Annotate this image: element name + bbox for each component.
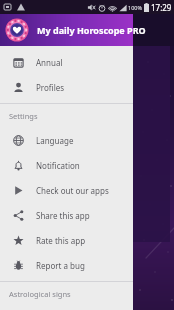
staticText: My daily Horoscope PRO: [37, 24, 146, 36]
staticText: omplies who: [14, 163, 56, 173]
button[interactable]: Rate this app: [0, 228, 133, 253]
staticText: Share this app: [36, 210, 90, 221]
button[interactable]: Report a bug: [0, 253, 133, 278]
staticText: Report a bug: [36, 260, 85, 271]
button[interactable]: Profiles: [0, 75, 133, 100]
staticText: January 20 to: [6, 284, 50, 294]
staticText: 100%: [128, 4, 143, 11]
button[interactable]: Check out our apps: [0, 178, 133, 203]
button[interactable]: Notification: [0, 153, 133, 178]
staticText: Scorpio: [6, 256, 52, 274]
staticText: s about the: [14, 202, 52, 212]
button[interactable]: Share this app: [0, 203, 133, 228]
staticText: Notification: [36, 160, 80, 171]
staticText: February 18: [6, 294, 46, 304]
staticText: Check out our apps: [36, 185, 109, 196]
staticText: 17:29: [151, 2, 172, 13]
staticText: Rate this app: [36, 235, 86, 246]
staticText: Annual: [36, 57, 63, 68]
staticText: Profiles: [36, 82, 65, 93]
button[interactable]: Language: [0, 128, 133, 153]
staticText: of your: [14, 189, 38, 199]
staticText: Astrological signs: [9, 289, 71, 299]
staticText: Settings: [9, 111, 38, 121]
staticText: Language: [36, 135, 74, 146]
staticText: nd in the: [14, 137, 44, 147]
button[interactable]: Annual: [0, 50, 133, 75]
other: App logo: [5, 18, 29, 42]
